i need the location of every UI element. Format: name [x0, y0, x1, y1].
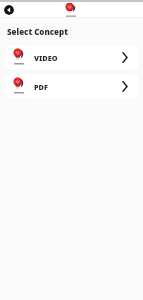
staticText: VIDEO [34, 53, 58, 63]
button[interactable]: VIDEO [5, 46, 138, 69]
staticText: PDF [34, 82, 48, 92]
button[interactable]: PDF [5, 75, 138, 98]
button[interactable]: Back [4, 5, 14, 15]
staticText: Select Concept [7, 26, 68, 37]
